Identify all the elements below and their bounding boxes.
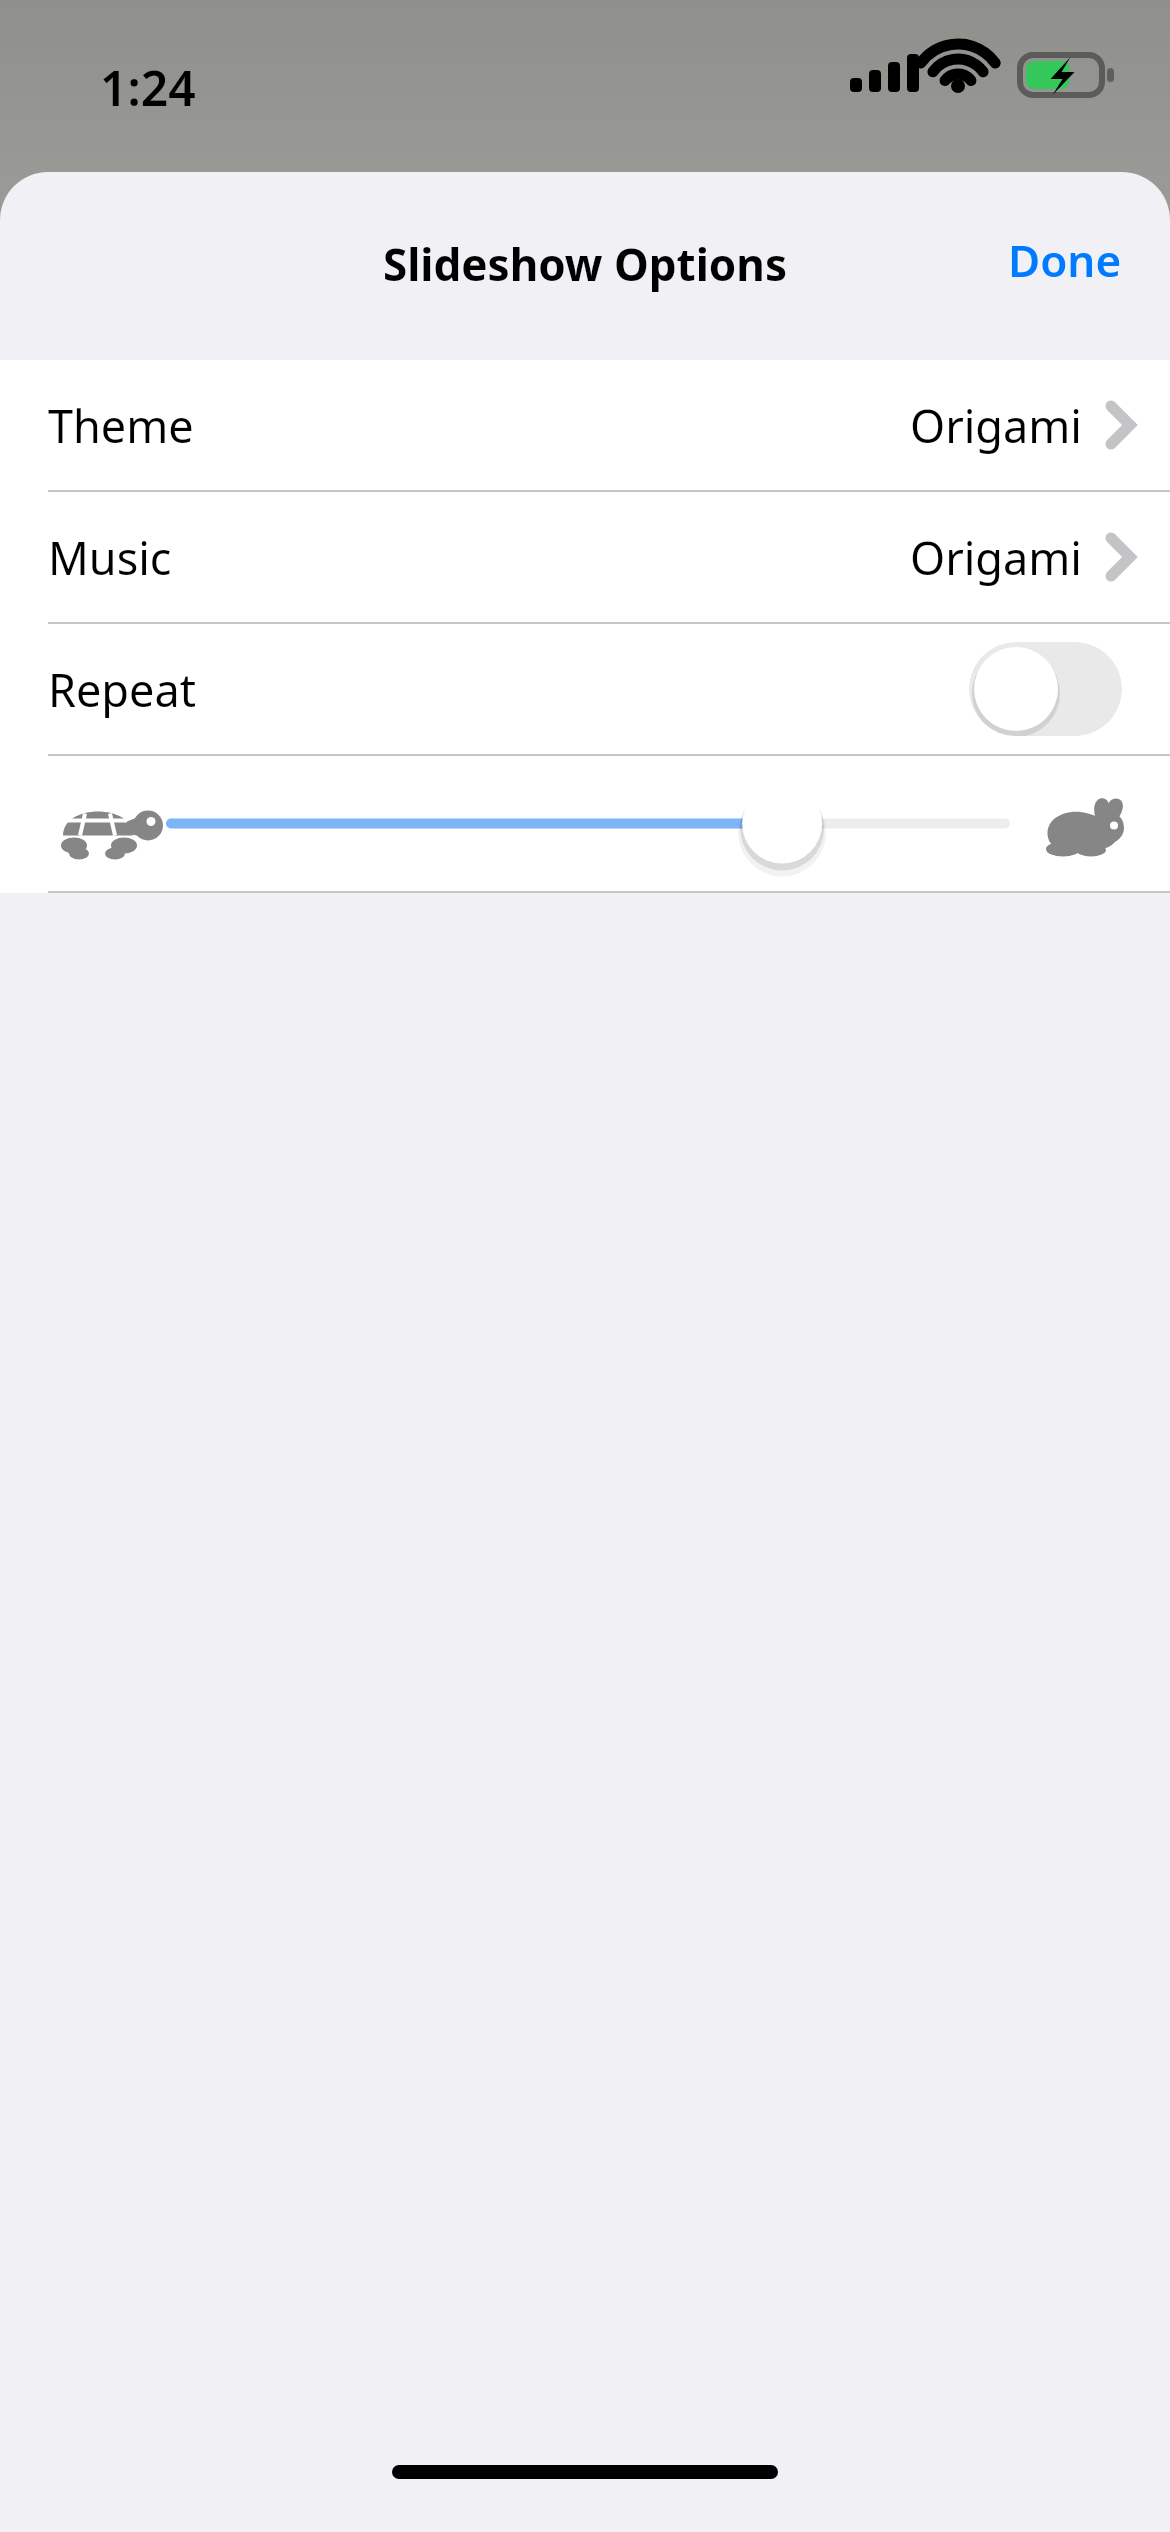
staticText: Repeat <box>48 659 196 720</box>
button[interactable]: Theme <box>0 360 1170 490</box>
staticText: Origami <box>910 395 1082 456</box>
button[interactable]: Slideshow speed <box>0 756 1170 891</box>
staticText: Theme <box>48 395 194 456</box>
staticText: Music <box>48 527 172 588</box>
button[interactable]: Repeat toggle <box>969 642 1122 736</box>
staticText: 1:24 <box>100 55 196 120</box>
button[interactable]: Music <box>0 492 1170 622</box>
button[interactable]: Done <box>960 208 1170 312</box>
staticText: Origami <box>910 527 1082 588</box>
staticText: Done <box>1008 230 1122 290</box>
staticText: Slideshow Options <box>0 234 1170 294</box>
button[interactable]: Repeat <box>0 624 1170 754</box>
